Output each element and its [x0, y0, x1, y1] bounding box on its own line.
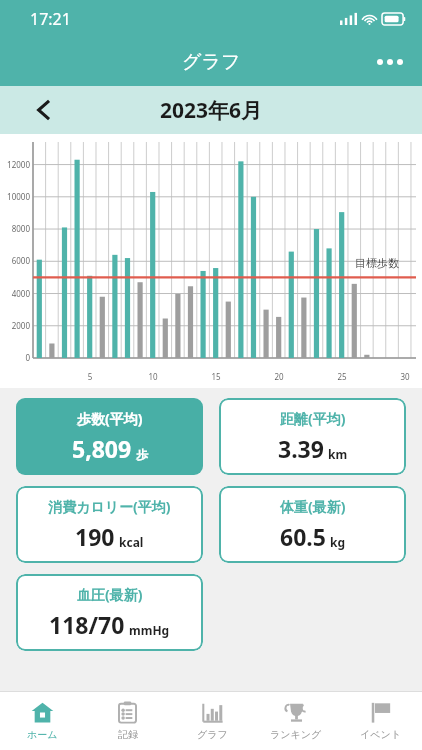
staticText: 0 [0, 352, 30, 363]
staticText: 目標歩数 [355, 256, 399, 270]
button[interactable]: 歩数(平均) [16, 398, 203, 475]
button[interactable]: イベント [338, 692, 422, 750]
button[interactable]: 距離(平均) [219, 398, 406, 475]
button[interactable]: More options [366, 38, 414, 86]
staticText: 60.5 [280, 521, 326, 552]
button[interactable]: グラフ [170, 692, 254, 750]
staticText: イベント [360, 728, 401, 741]
button[interactable]: 記録 [85, 692, 170, 750]
staticText: ホーム [27, 728, 58, 741]
staticText: 3.39 [278, 433, 324, 464]
staticText: 118/70 [49, 609, 125, 640]
staticText: 5 [82, 371, 98, 382]
staticText: グラフ [197, 728, 228, 741]
staticText: 消費カロリー(平均) [48, 497, 171, 516]
staticText: 25 [334, 371, 350, 382]
staticText: km [328, 446, 348, 462]
staticText: 6000 [0, 255, 30, 266]
staticText: 10 [145, 371, 161, 382]
button[interactable]: ホーム [0, 692, 85, 750]
staticText: 2000 [0, 320, 30, 331]
staticText: 歩数(平均) [77, 409, 143, 428]
staticText: 歩 [136, 447, 148, 462]
staticText: 30 [397, 371, 413, 382]
staticText: mmHg [129, 622, 170, 638]
staticText: 20 [271, 371, 287, 382]
staticText: 血圧(最新) [77, 585, 143, 604]
button[interactable]: 体重(最新) [219, 486, 406, 563]
staticText: 15 [208, 371, 224, 382]
staticText: 体重(最新) [280, 497, 346, 516]
staticText: 8000 [0, 223, 30, 234]
staticText: 17:21 [30, 8, 71, 30]
staticText: グラフ [182, 50, 241, 74]
staticText: 10000 [0, 191, 30, 202]
staticText: 5,809 [72, 433, 132, 464]
staticText: ランキング [270, 728, 322, 741]
button[interactable]: 消費カロリー(平均) [16, 486, 203, 563]
button[interactable]: ランキング [254, 692, 338, 750]
button[interactable]: Previous month [22, 88, 66, 132]
staticText: 記録 [118, 728, 138, 741]
staticText: kg [330, 534, 346, 550]
staticText: 12000 [0, 159, 30, 170]
staticText: 2023年6月 [160, 96, 263, 125]
staticText: kcal [119, 534, 144, 550]
staticText: 190 [75, 521, 115, 552]
staticText: 4000 [0, 288, 30, 299]
button[interactable]: 血圧(最新) [16, 574, 203, 651]
staticText: 距離(平均) [280, 409, 346, 428]
